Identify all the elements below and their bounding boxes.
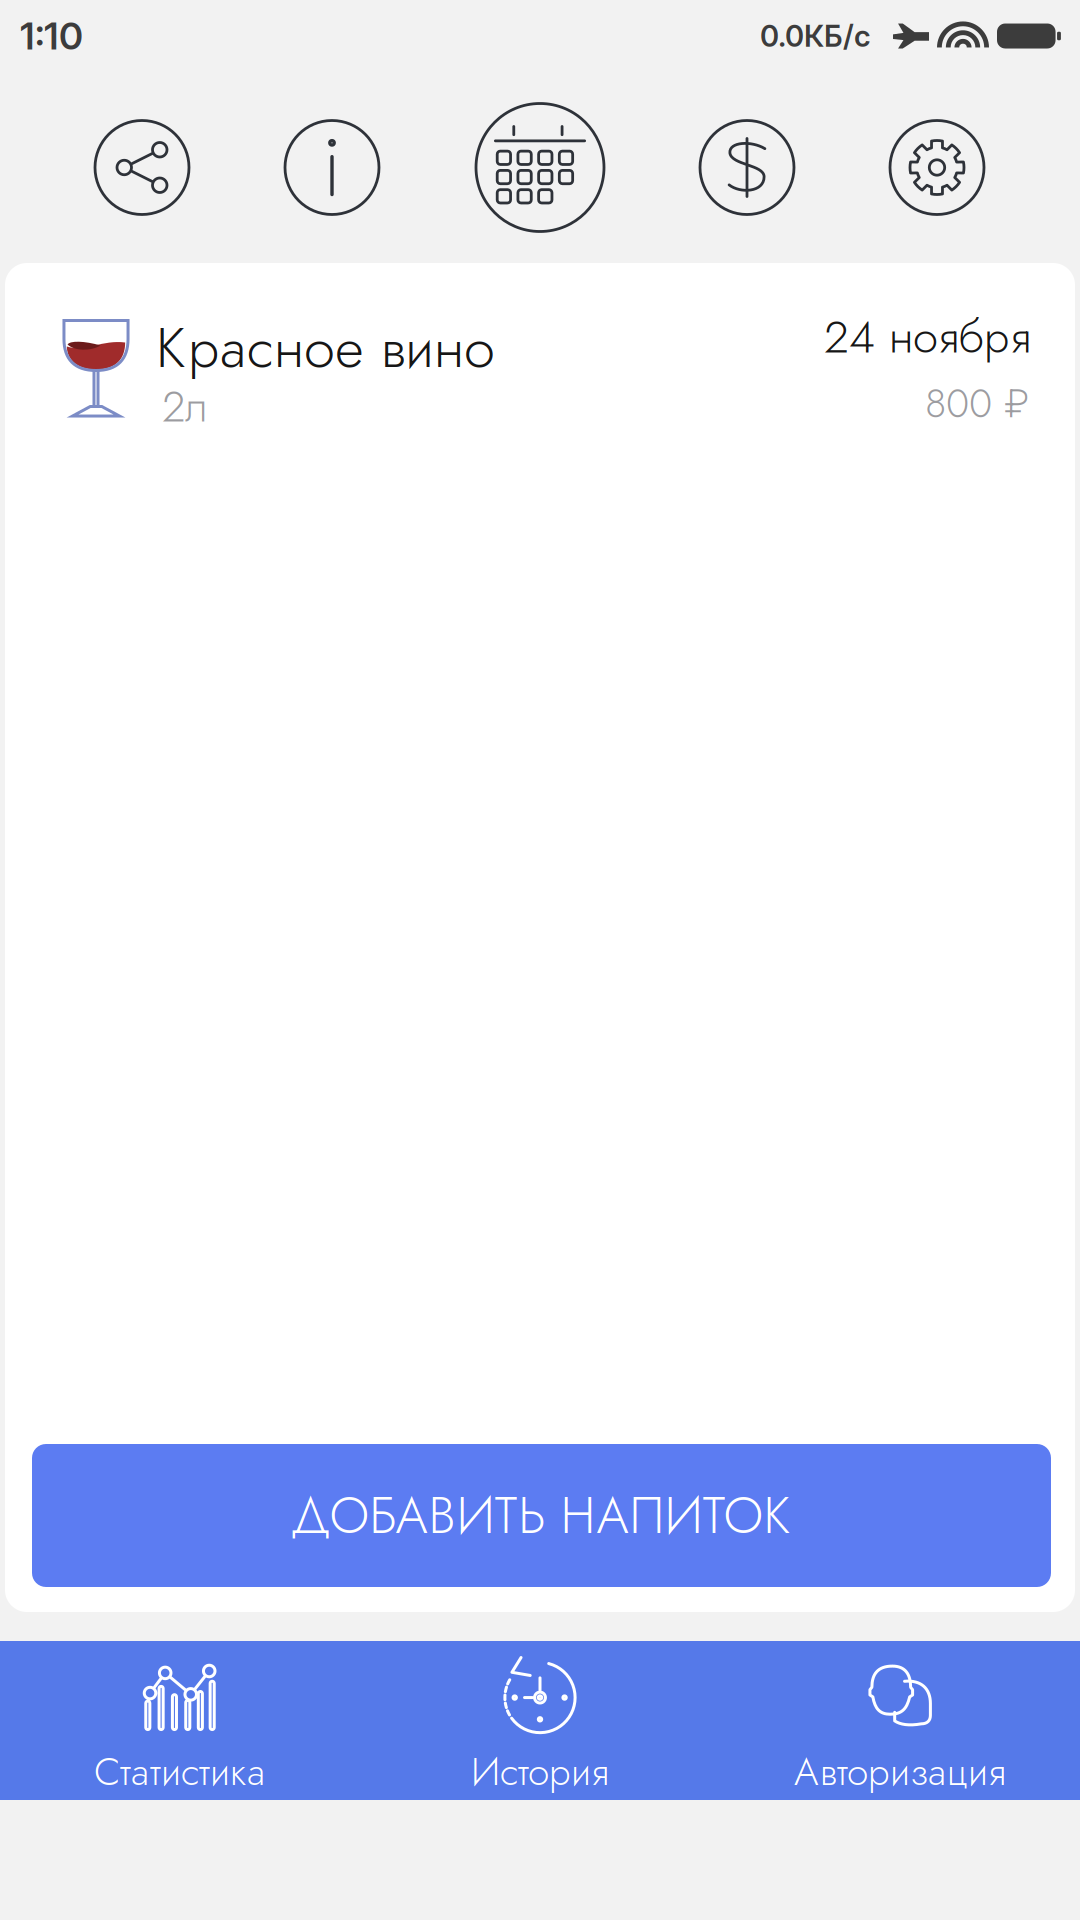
staticText: Авторизация	[794, 1744, 1006, 1799]
staticText: 0.0КБ/c	[760, 18, 871, 54]
button[interactable]: Авторизация	[720, 1641, 1080, 1800]
staticText: 1:10	[20, 13, 83, 59]
button[interactable]: Информация	[257, 92, 407, 242]
button[interactable]: ДОБАВИТЬ НАПИТОК	[32, 1444, 1051, 1587]
button[interactable]: Настройки	[862, 92, 1012, 242]
staticText: 2л	[162, 376, 208, 438]
staticText: 91	[1014, 21, 1040, 51]
staticText: История	[471, 1744, 609, 1799]
staticText: Статистика	[94, 1744, 266, 1799]
button[interactable]: Календарь	[465, 92, 615, 242]
button[interactable]: История	[360, 1641, 720, 1800]
staticText: ДОБАВИТЬ НАПИТОК	[290, 1479, 792, 1552]
staticText: Красное вино	[156, 307, 495, 388]
staticText: 24 ноября	[824, 304, 1031, 369]
staticText: 800 ₽	[925, 374, 1031, 432]
button[interactable]: Статистика	[0, 1641, 360, 1800]
button[interactable]: Стоимость	[672, 92, 822, 242]
button[interactable]: Поделиться	[67, 92, 217, 242]
